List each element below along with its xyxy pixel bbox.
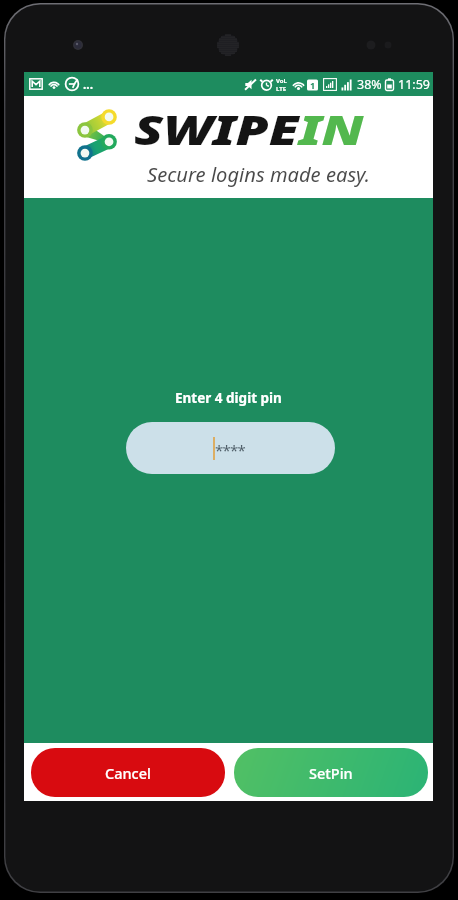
staticText: VoL: [276, 77, 287, 85]
staticText: Secure logins made easy.: [147, 162, 371, 188]
staticText: 38%: [357, 76, 382, 93]
staticText: 1: [310, 79, 316, 91]
staticText: IN: [299, 102, 364, 156]
button[interactable]: 4 digit pin entry field: [126, 422, 335, 474]
staticText: LTE: [276, 85, 287, 93]
button[interactable]: Cancel: [31, 748, 225, 797]
button[interactable]: SetPin: [234, 748, 428, 797]
staticText: Cancel: [105, 763, 151, 783]
staticText: Enter 4 digit pin: [175, 389, 282, 407]
staticText: SWIPE: [134, 102, 299, 156]
staticText: 11:59: [398, 76, 430, 93]
staticText: ****: [215, 440, 245, 460]
staticText: SetPin: [309, 763, 353, 783]
staticText: ...: [83, 76, 94, 92]
